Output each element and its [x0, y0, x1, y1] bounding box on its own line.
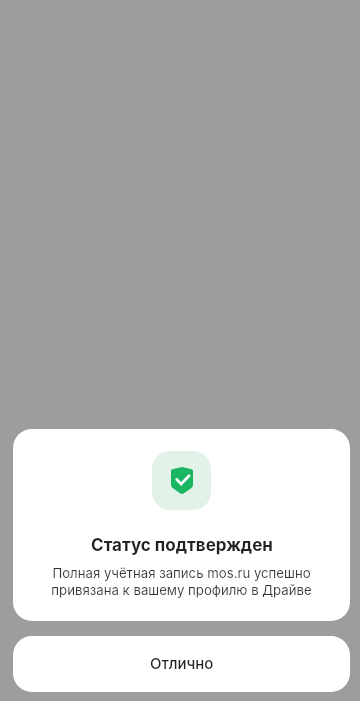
staticText: Статус подтвержден: [91, 535, 273, 556]
staticText: Отлично: [150, 654, 214, 672]
button[interactable]: Отлично: [13, 636, 350, 692]
staticText: Полная учётная запись mos.ru успешно при…: [51, 565, 312, 598]
